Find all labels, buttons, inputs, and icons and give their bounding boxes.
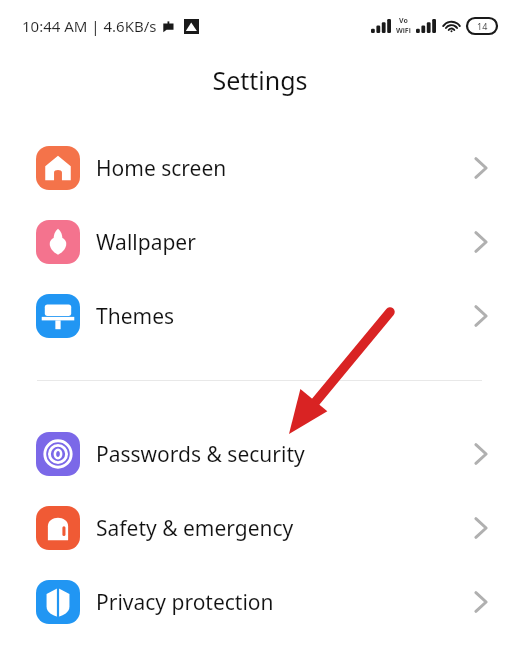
staticText: Privacy protection: [96, 588, 473, 617]
staticText: WiFi: [396, 26, 411, 36]
staticText: Settings: [212, 63, 308, 97]
staticText: Themes: [96, 302, 473, 331]
staticText: Vo: [399, 16, 408, 26]
button[interactable]: Safety & emergency: [0, 491, 519, 565]
staticText: Passwords & security: [96, 440, 473, 469]
button[interactable]: Privacy protection: [0, 565, 519, 639]
button[interactable]: Passwords & security: [0, 417, 519, 491]
staticText: 10:44 AM | 4.6KB/s: [22, 16, 157, 36]
button[interactable]: Wallpaper: [0, 205, 519, 279]
staticText: 14: [477, 20, 488, 32]
staticText: Safety & emergency: [96, 514, 473, 543]
staticText: Home screen: [96, 154, 473, 183]
staticText: Wallpaper: [96, 228, 473, 257]
button[interactable]: Themes: [0, 279, 519, 353]
button[interactable]: Home screen: [0, 131, 519, 205]
